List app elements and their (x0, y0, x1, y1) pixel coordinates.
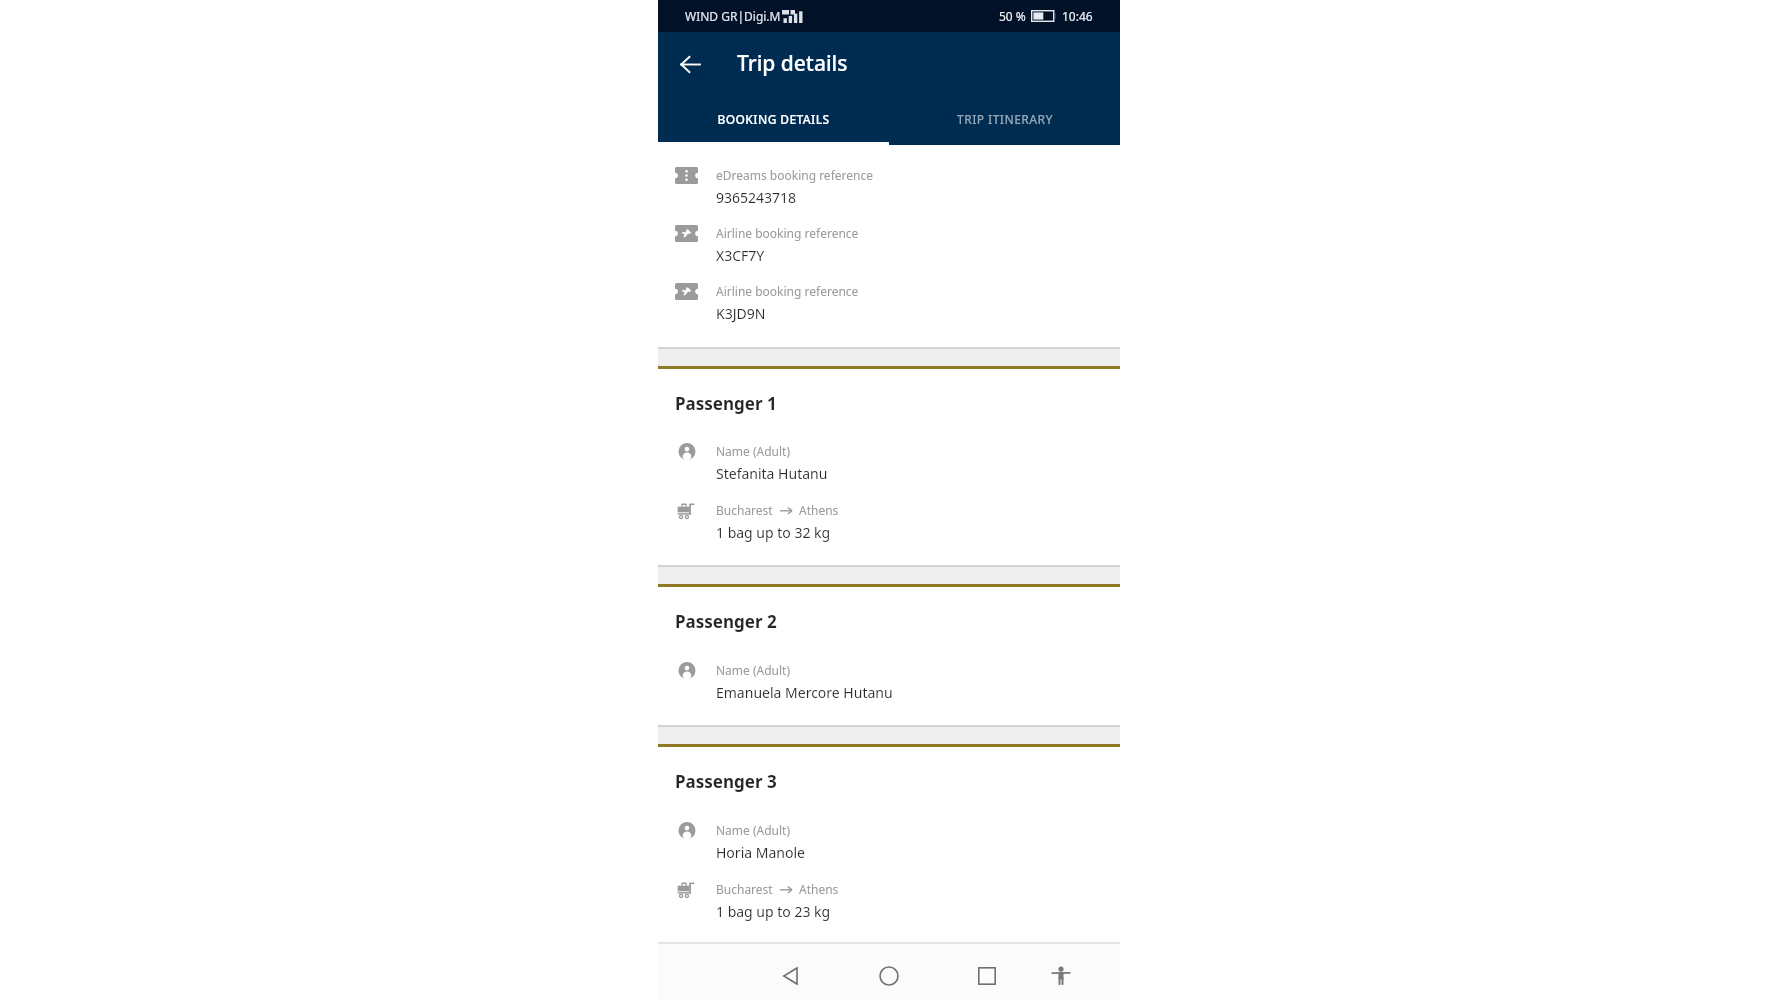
staticText: Athens (799, 502, 839, 518)
staticText: Stefanita Hutanu (716, 464, 828, 483)
staticText: X3CF7Y (716, 246, 765, 265)
staticText: 9365243718 (716, 188, 797, 207)
staticText: Name (Adult) (716, 822, 791, 838)
staticText: Name (Adult) (716, 662, 791, 678)
staticText: Trip details (737, 49, 848, 78)
button[interactable]: Bucharest (658, 502, 1120, 542)
staticText: 50 % (999, 8, 1026, 24)
button[interactable]: BOOKING DETAILS (658, 32, 889, 142)
button[interactable]: Recents (963, 952, 1011, 1000)
staticText: TRIP ITINERARY (957, 111, 1053, 127)
staticText: Name (Adult) (716, 443, 791, 459)
staticText: BOOKING DETAILS (717, 111, 830, 127)
button[interactable]: Back (672, 46, 708, 82)
staticText: Passenger 2 (675, 610, 777, 633)
staticText: Passenger 1 (675, 392, 777, 415)
button[interactable]: TRIP ITINERARY (889, 32, 1120, 142)
staticText: K3JD9N (716, 304, 766, 323)
button[interactable]: Name (Adult) (658, 443, 1120, 483)
button[interactable]: Airline booking reference (658, 283, 1120, 323)
staticText: Airline booking reference (716, 225, 859, 241)
button[interactable]: Name (Adult) (658, 822, 1120, 862)
button[interactable]: Airline booking reference (658, 225, 1120, 265)
button[interactable]: Accessibility (1037, 952, 1085, 1000)
staticText: 10:46 (1062, 8, 1093, 24)
button[interactable]: Back (767, 952, 815, 1000)
staticText: Athens (799, 881, 839, 897)
button[interactable]: Home (865, 952, 913, 1000)
staticText: Passenger 3 (675, 770, 777, 793)
staticText: Bucharest (716, 502, 773, 518)
staticText: Airline booking reference (716, 283, 859, 299)
button[interactable]: eDreams booking reference (658, 167, 1120, 207)
staticText: Horia Manole (716, 843, 805, 862)
staticText: 1 bag up to 32 kg (716, 523, 831, 542)
staticText: eDreams booking reference (716, 167, 873, 183)
button[interactable]: Bucharest (658, 881, 1120, 921)
staticText: Emanuela Mercore Hutanu (716, 683, 893, 702)
staticText: Bucharest (716, 881, 773, 897)
staticText: 1 bag up to 23 kg (716, 902, 831, 921)
staticText: WIND GR|Digi.M (685, 8, 781, 24)
button[interactable]: Name (Adult) (658, 662, 1120, 702)
